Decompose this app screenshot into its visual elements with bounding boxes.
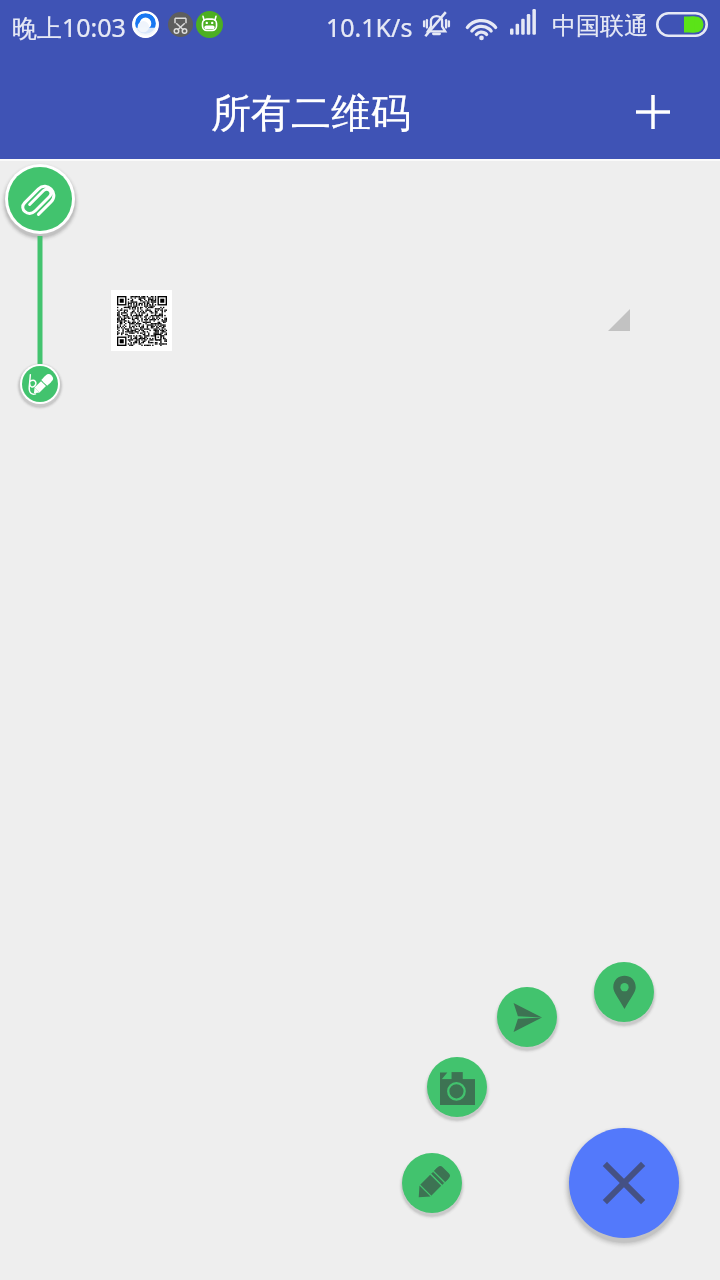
staticText: 10.1K/s: [326, 10, 413, 44]
button[interactable]: Attachment: [8, 167, 72, 231]
staticText: 所有二维码: [211, 88, 411, 138]
button[interactable]: Draw: [402, 1153, 462, 1213]
staticText: 中国联通: [552, 11, 648, 41]
button[interactable]: Location: [594, 962, 654, 1022]
button[interactable]: Add: [619, 78, 687, 146]
button[interactable]: Edit: [22, 366, 58, 402]
button[interactable]: Camera: [427, 1057, 487, 1117]
staticText: 晚上10:03: [12, 10, 126, 44]
button[interactable]: Send: [497, 987, 557, 1047]
button[interactable]: QR code: [111, 290, 172, 351]
button[interactable]: Close: [569, 1128, 679, 1238]
